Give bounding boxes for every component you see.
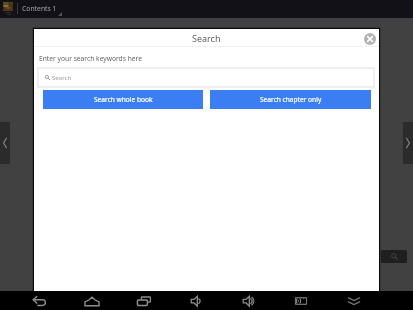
button[interactable]: Recent apps bbox=[131, 292, 157, 309]
staticText: Search bbox=[52, 73, 72, 81]
button[interactable]: Previous page bbox=[0, 122, 10, 164]
staticText: Search whole book bbox=[94, 95, 153, 104]
button[interactable]: Volume down bbox=[184, 292, 210, 309]
button[interactable]: Book cover bbox=[3, 2, 13, 11]
staticText: Search chapter only bbox=[260, 95, 322, 104]
staticText: Contents 1 bbox=[22, 4, 57, 13]
button[interactable]: Search whole book bbox=[43, 90, 203, 109]
button[interactable]: Volume up bbox=[236, 292, 262, 309]
staticText: Enter your search keywords here bbox=[39, 54, 142, 63]
button[interactable]: Close bbox=[364, 33, 376, 45]
button[interactable]: Search chapter only bbox=[210, 90, 371, 109]
button[interactable]: Screenshot bbox=[288, 292, 314, 309]
button[interactable]: Back bbox=[26, 292, 52, 309]
staticText: Search bbox=[192, 32, 221, 44]
button[interactable]: Home bbox=[79, 292, 105, 309]
button[interactable]: Next page bbox=[403, 122, 413, 164]
button[interactable]: Search bbox=[381, 250, 407, 263]
button[interactable]: Search bbox=[38, 68, 374, 87]
button[interactable]: Hide navigation bar bbox=[341, 292, 367, 309]
